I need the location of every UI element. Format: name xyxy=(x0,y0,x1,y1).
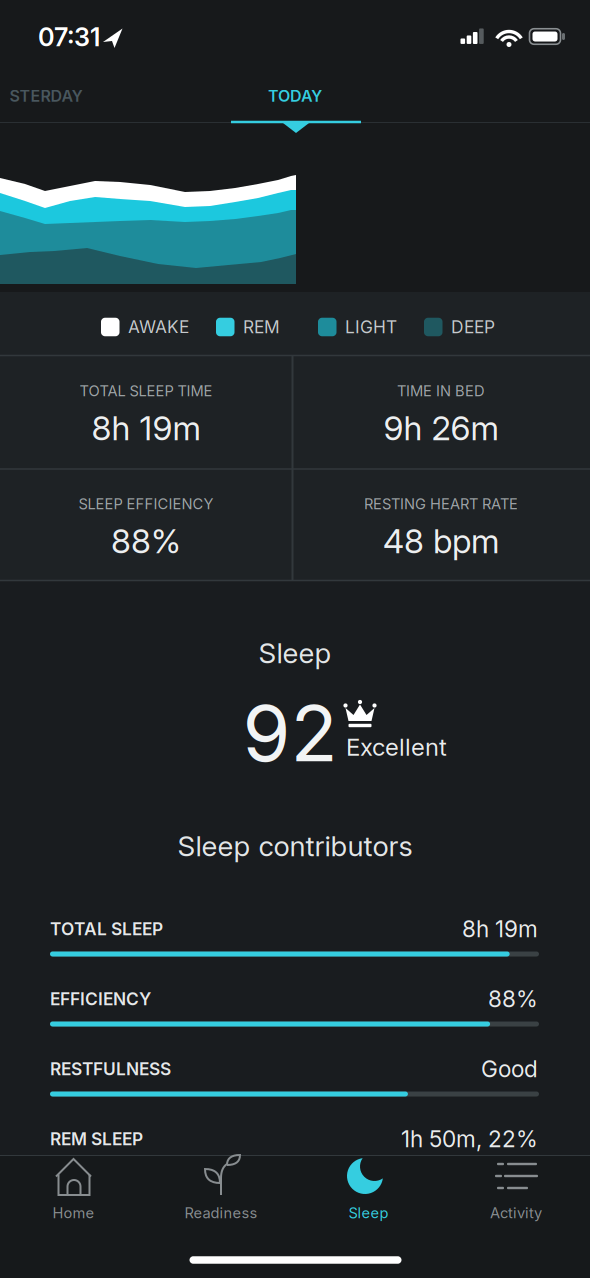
staticText: 07:31 xyxy=(38,22,100,52)
button[interactable]: STERDAY xyxy=(0,70,121,122)
staticText: REM xyxy=(243,317,280,337)
staticText: Excellent xyxy=(346,733,447,761)
staticText: RESTFULNESS xyxy=(50,1059,171,1079)
staticText: 88% xyxy=(488,986,538,1012)
staticText: Activity xyxy=(490,1204,542,1222)
staticText: 88% xyxy=(111,521,181,561)
staticText: 9h 26m xyxy=(383,408,498,448)
staticText: REM SLEEP xyxy=(50,1129,143,1149)
staticText: Sleep xyxy=(348,1204,388,1222)
staticText: 92 xyxy=(242,687,337,779)
staticText: TOTAL SLEEP TIME xyxy=(79,382,212,400)
staticText: RESTING HEART RATE xyxy=(364,495,518,513)
button[interactable]: TODAY xyxy=(215,70,375,122)
staticText: TODAY xyxy=(268,87,322,105)
staticText: 48 bpm xyxy=(383,521,499,561)
staticText: Readiness xyxy=(184,1204,257,1222)
button[interactable]: REM SLEEP xyxy=(50,1124,540,1172)
staticText: LIGHT xyxy=(345,317,397,337)
staticText: 1h 50m, 22% xyxy=(401,1126,538,1152)
staticText: Home xyxy=(52,1204,94,1222)
staticText: SLEEP EFFICIENCY xyxy=(78,495,213,513)
staticText: 8h 19m xyxy=(91,408,200,448)
button[interactable]: TOTAL SLEEP xyxy=(50,914,540,962)
button[interactable]: EFFICIENCY xyxy=(50,984,540,1032)
button[interactable]: Readiness xyxy=(147,1155,295,1246)
staticText: Sleep xyxy=(258,636,331,669)
staticText: EFFICIENCY xyxy=(50,989,151,1009)
button[interactable]: Sleep xyxy=(295,1155,442,1246)
button[interactable]: Activity xyxy=(442,1155,590,1246)
button[interactable]: RESTFULNESS xyxy=(50,1054,540,1102)
staticText: DEEP xyxy=(451,317,495,337)
staticText: AWAKE xyxy=(128,317,189,337)
staticText: 8h 19m xyxy=(462,916,538,942)
staticText: STERDAY xyxy=(9,87,82,105)
staticText: Sleep contributors xyxy=(177,829,412,862)
button[interactable]: Home xyxy=(0,1155,147,1246)
staticText: TOTAL SLEEP xyxy=(50,919,163,939)
staticText: Good xyxy=(481,1056,538,1082)
staticText: TIME IN BED xyxy=(397,382,485,400)
